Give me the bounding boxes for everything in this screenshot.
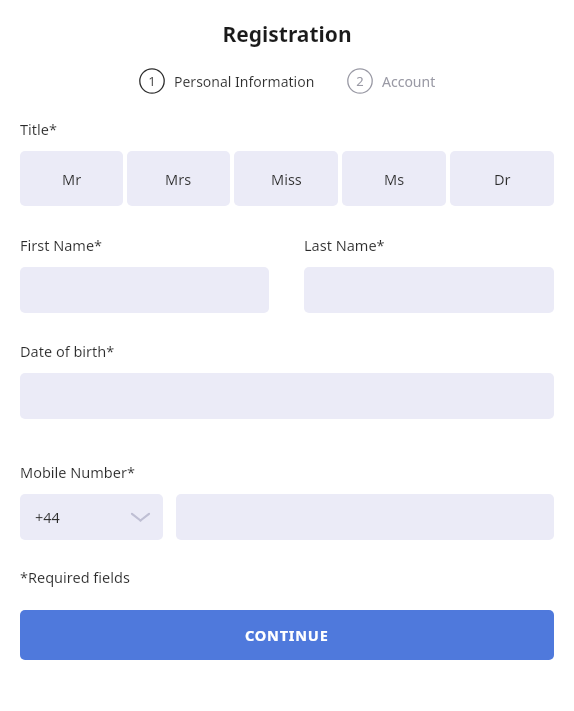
staticText: Title* (20, 119, 57, 139)
staticText: *Required fields (20, 567, 130, 587)
staticText: Mr (62, 169, 82, 189)
button[interactable]: CONTINUE (20, 610, 554, 660)
staticText: Registration (0, 20, 574, 49)
button[interactable]: Miss (234, 151, 338, 206)
staticText: 2 (356, 72, 364, 90)
staticText: Miss (271, 169, 302, 189)
staticText: Account (382, 72, 436, 91)
staticText: +44 (35, 507, 60, 527)
staticText: Dr (494, 169, 511, 189)
button[interactable]: Dr (450, 151, 554, 206)
button[interactable]: Mrs (127, 151, 230, 206)
button[interactable]: 2 (347, 68, 436, 94)
staticText: Personal Information (174, 72, 315, 91)
staticText: CONTINUE (245, 625, 329, 645)
button[interactable]: Ms (342, 151, 446, 206)
staticText: Date of birth* (20, 341, 115, 361)
staticText: Mrs (165, 169, 192, 189)
staticText: Last Name* (304, 235, 385, 255)
button[interactable]: +44 (20, 494, 163, 540)
staticText: Ms (384, 169, 405, 189)
button[interactable]: 1 (139, 68, 315, 94)
button[interactable]: Mr (20, 151, 123, 206)
staticText: 1 (148, 72, 156, 90)
staticText: First Name* (20, 235, 103, 255)
staticText: Mobile Number* (20, 462, 135, 482)
